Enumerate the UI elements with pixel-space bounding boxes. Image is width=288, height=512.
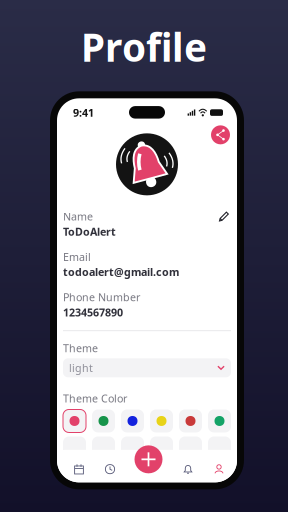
staticText: Name	[63, 209, 93, 223]
button[interactable]: Theme colour	[63, 409, 86, 432]
button[interactable]: Theme colour	[150, 409, 173, 432]
button[interactable]: Share	[211, 125, 230, 144]
staticText: todoalert@gmail.com	[63, 265, 179, 279]
staticText: Email	[63, 250, 91, 264]
button[interactable]: Add	[134, 445, 162, 473]
staticText: 9:41	[73, 105, 94, 120]
button[interactable]: History	[96, 455, 124, 483]
button[interactable]: Notifications	[174, 455, 202, 483]
staticText: 1234567890	[63, 305, 123, 319]
button[interactable]: Theme colour	[150, 436, 173, 459]
button[interactable]: Profile	[205, 455, 233, 483]
button[interactable]: Theme colour	[179, 436, 202, 459]
button[interactable]: Theme colour	[208, 409, 231, 432]
staticText: Theme Color	[63, 391, 127, 405]
staticText: Profile	[81, 21, 207, 72]
button[interactable]: Theme colour	[92, 409, 115, 432]
button[interactable]: Theme colour	[208, 436, 231, 459]
button[interactable]: Theme colour	[92, 436, 115, 459]
button[interactable]: Theme colour	[121, 436, 144, 459]
staticText: Phone Number	[63, 290, 140, 304]
staticText: ToDoAlert	[63, 224, 116, 239]
staticText: light	[69, 361, 93, 375]
staticText: Theme	[63, 341, 98, 355]
button[interactable]: Theme colour	[179, 409, 202, 432]
button[interactable]: Theme colour	[121, 409, 144, 432]
button[interactable]: Calendar	[65, 455, 93, 483]
button[interactable]: Theme colour	[63, 436, 86, 459]
button[interactable]: Theme: light	[63, 358, 231, 377]
button[interactable]: Edit profile	[217, 209, 231, 223]
